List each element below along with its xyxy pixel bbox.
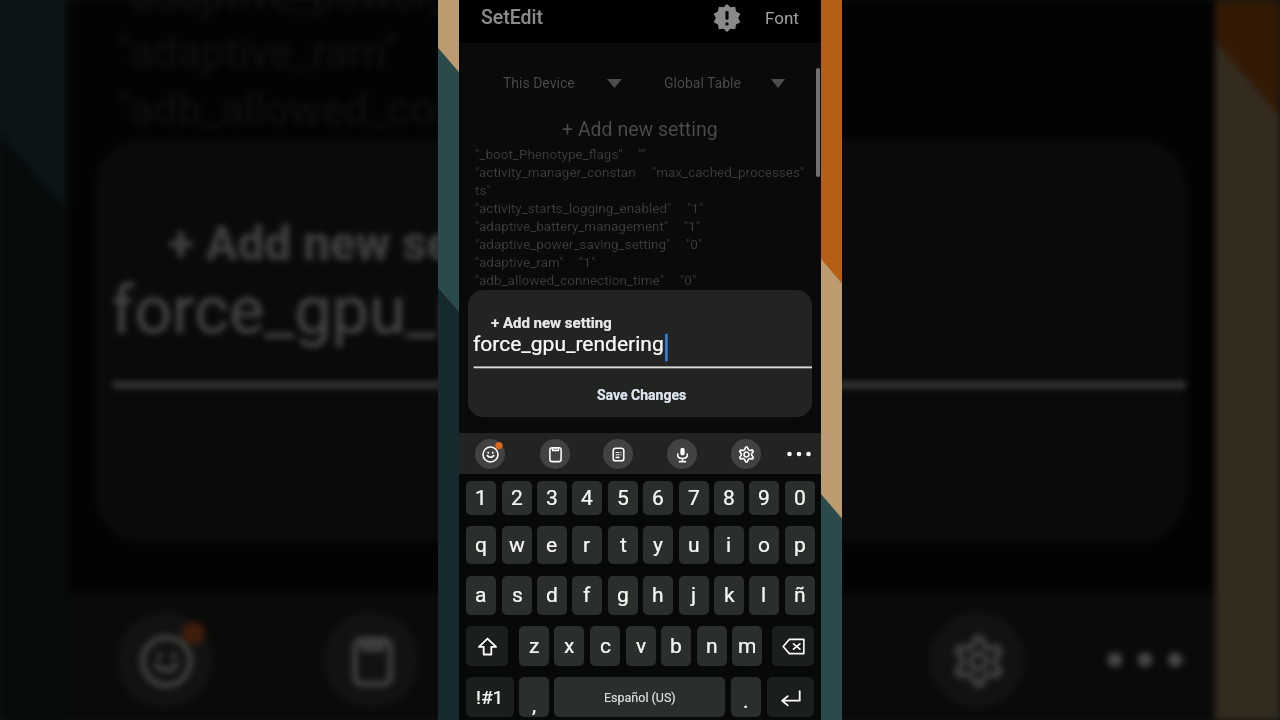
button[interactable]: "adaptive_power_saving_setting" [67,0,1215,22]
button[interactable]: 7 [679,481,709,515]
staticText: "activity_manager_constan [475,164,636,180]
button[interactable]: i [714,526,744,564]
button[interactable]: "activity_manager_constan [459,163,821,181]
staticText: l [761,583,767,608]
button[interactable]: Save Changes [460,431,834,514]
button[interactable]: 5 [608,481,638,515]
staticText: 2 [511,486,523,511]
button[interactable]: w [502,526,532,564]
button[interactable]: Symbols [466,677,514,717]
staticText: "max_cached_processes" [652,164,805,180]
button[interactable]: Voice input [726,612,822,707]
button[interactable]: , [519,677,549,717]
button[interactable]: Text editing [523,612,619,707]
button[interactable]: This Device [503,70,622,96]
staticText: d [546,583,558,608]
button[interactable]: 2 [502,481,532,515]
staticText: b [670,634,682,659]
staticText: 3 [546,486,558,511]
button[interactable]: h [643,576,673,615]
button[interactable]: b [661,626,691,666]
button[interactable]: s [459,289,821,307]
button[interactable]: s [502,576,532,615]
button[interactable]: ñ [785,576,815,615]
staticText: c [600,634,611,659]
button[interactable]: s [67,136,1215,193]
staticText: m [738,634,757,659]
button[interactable]: d [537,576,567,615]
staticText: "adaptive_power_saving_setting" [475,236,671,252]
button[interactable]: "adaptive_battery_management" [459,217,821,235]
button[interactable]: Shift [466,626,508,666]
button[interactable]: Font [763,4,801,32]
button[interactable]: l [749,576,779,615]
button[interactable]: p [785,526,815,564]
button[interactable]: g [608,576,638,615]
staticText: r [583,533,591,558]
button[interactable]: f [572,576,602,615]
button[interactable]: Voice input [667,439,697,469]
button[interactable]: v [626,626,656,666]
staticText: SetEdit [481,6,544,29]
button[interactable]: Settings [731,439,761,469]
staticText: p [794,533,806,558]
staticText: "adaptive_power_saving_setting" [117,0,739,19]
button[interactable]: . [731,677,761,717]
button[interactable]: 8 [714,481,744,515]
button[interactable]: a [466,576,496,615]
staticText: 4 [581,486,593,511]
button[interactable]: u [679,526,709,564]
button[interactable]: Emoji [475,439,505,469]
button[interactable]: r [572,526,602,564]
button[interactable]: n [697,626,727,666]
button[interactable]: More options [1097,612,1193,707]
button[interactable]: j [679,576,709,615]
button[interactable]: "adaptive_ram" [459,253,821,271]
button[interactable]: "adb_allowed_connection_time" [67,79,1215,136]
button[interactable]: "adaptive_power_saving_setting" [459,235,821,253]
staticText: "0" [686,236,703,252]
button[interactable]: Global Table [664,70,785,96]
button[interactable]: 4 [572,481,602,515]
button[interactable]: Settings [929,612,1025,707]
button[interactable]: t [608,526,638,564]
button[interactable]: q [466,526,496,564]
button[interactable]: 1 [466,481,496,515]
button[interactable]: o [749,526,779,564]
staticText: 7 [688,486,700,511]
button[interactable]: Enter [767,677,814,717]
staticText: v [636,634,647,659]
staticText: 6 [652,486,664,511]
button[interactable]: "adb_allowed_connection_time" [459,271,821,289]
staticText: "adb_allowed_connection_time" [475,272,665,288]
button[interactable]: Save Changes [583,382,701,408]
button[interactable]: y [643,526,673,564]
button[interactable]: e [537,526,567,564]
button[interactable]: Backspace [772,626,814,666]
staticText: 1 [475,486,487,511]
button[interactable]: "_boot_Phenotype_flags" [459,145,821,163]
button[interactable]: Clipboard [540,439,570,469]
button[interactable]: Text editing [603,439,633,469]
button[interactable]: Alert [711,2,743,34]
button[interactable]: 9 [749,481,779,515]
button[interactable]: k [714,576,744,615]
button[interactable]: "adaptive_ram" [67,22,1215,79]
button[interactable]: z [519,626,549,666]
button[interactable]: 6 [643,481,673,515]
button[interactable]: m [732,626,762,666]
button[interactable]: "activity_starts_logging_enabled" [459,199,821,217]
button[interactable]: Emoji [117,612,213,707]
button[interactable]: More options [784,439,814,469]
staticText: "adaptive_battery_management" [475,218,669,234]
staticText: . [743,689,749,714]
button[interactable]: Español (US) [554,677,725,717]
button[interactable]: x [554,626,584,666]
button[interactable]: c [590,626,620,666]
button[interactable]: 3 [537,481,567,515]
button[interactable]: Clipboard [323,612,419,707]
staticText: ts" [475,182,491,198]
button[interactable]: + Add new setting [459,113,821,145]
button[interactable]: 0 [785,481,815,515]
